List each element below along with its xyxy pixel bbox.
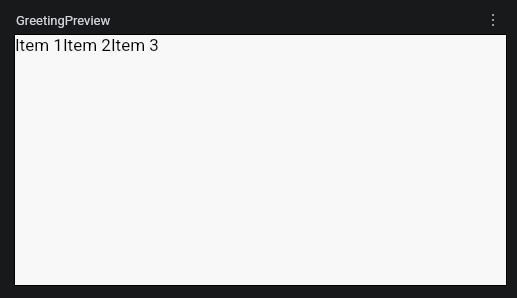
button[interactable]: Item 3: [111, 35, 159, 55]
button[interactable]: Item 2: [63, 35, 111, 55]
button[interactable]: GreetingPreview: [16, 13, 111, 28]
button[interactable]: More options: [483, 8, 503, 32]
button[interactable]: Item 1: [15, 35, 63, 55]
